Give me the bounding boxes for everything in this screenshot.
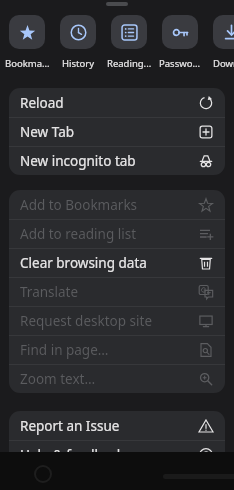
staticText: Translate (20, 283, 79, 301)
button[interactable]: History (60, 15, 96, 71)
button[interactable]: Help & feedback (9, 440, 225, 452)
staticText: Reload (20, 94, 64, 112)
button[interactable]: Add to Bookmarks (9, 190, 225, 219)
button[interactable]: Request desktop site (9, 306, 225, 335)
staticText: Report an Issue (20, 417, 120, 435)
staticText: Help & feedback (20, 446, 125, 452)
staticText: Bookma... (5, 57, 50, 70)
staticText: Add to reading list (20, 225, 137, 243)
staticText: Find in page… (20, 341, 109, 359)
staticText: Add to Bookmarks (20, 196, 138, 214)
button[interactable]: Downloads (213, 15, 234, 71)
button[interactable]: New incognito tab (9, 146, 225, 175)
button[interactable]: Passwords (162, 15, 198, 71)
staticText: Clear browsing data (20, 254, 147, 272)
button[interactable]: Clear browsing data (9, 248, 225, 277)
staticText: Reading... (107, 57, 152, 70)
staticText: Passwo... (159, 57, 201, 70)
staticText: Request desktop site (20, 312, 153, 330)
button[interactable]: Find in page… (9, 335, 225, 364)
button[interactable]: Reading list (111, 15, 147, 71)
button[interactable]: Translate (9, 277, 225, 306)
staticText: History (62, 57, 94, 70)
staticText: Zoom text… (20, 370, 96, 388)
button[interactable]: Report an Issue (9, 411, 225, 440)
button[interactable]: New Tab (9, 117, 225, 146)
button[interactable]: Add to reading list (9, 219, 225, 248)
button[interactable]: Reload (9, 88, 225, 117)
button[interactable]: Zoom text… (9, 364, 225, 393)
button[interactable]: Bookmarks (9, 15, 45, 71)
staticText: New incognito tab (20, 152, 136, 170)
staticText: New Tab (20, 123, 75, 141)
staticText: Downl... (213, 57, 234, 70)
